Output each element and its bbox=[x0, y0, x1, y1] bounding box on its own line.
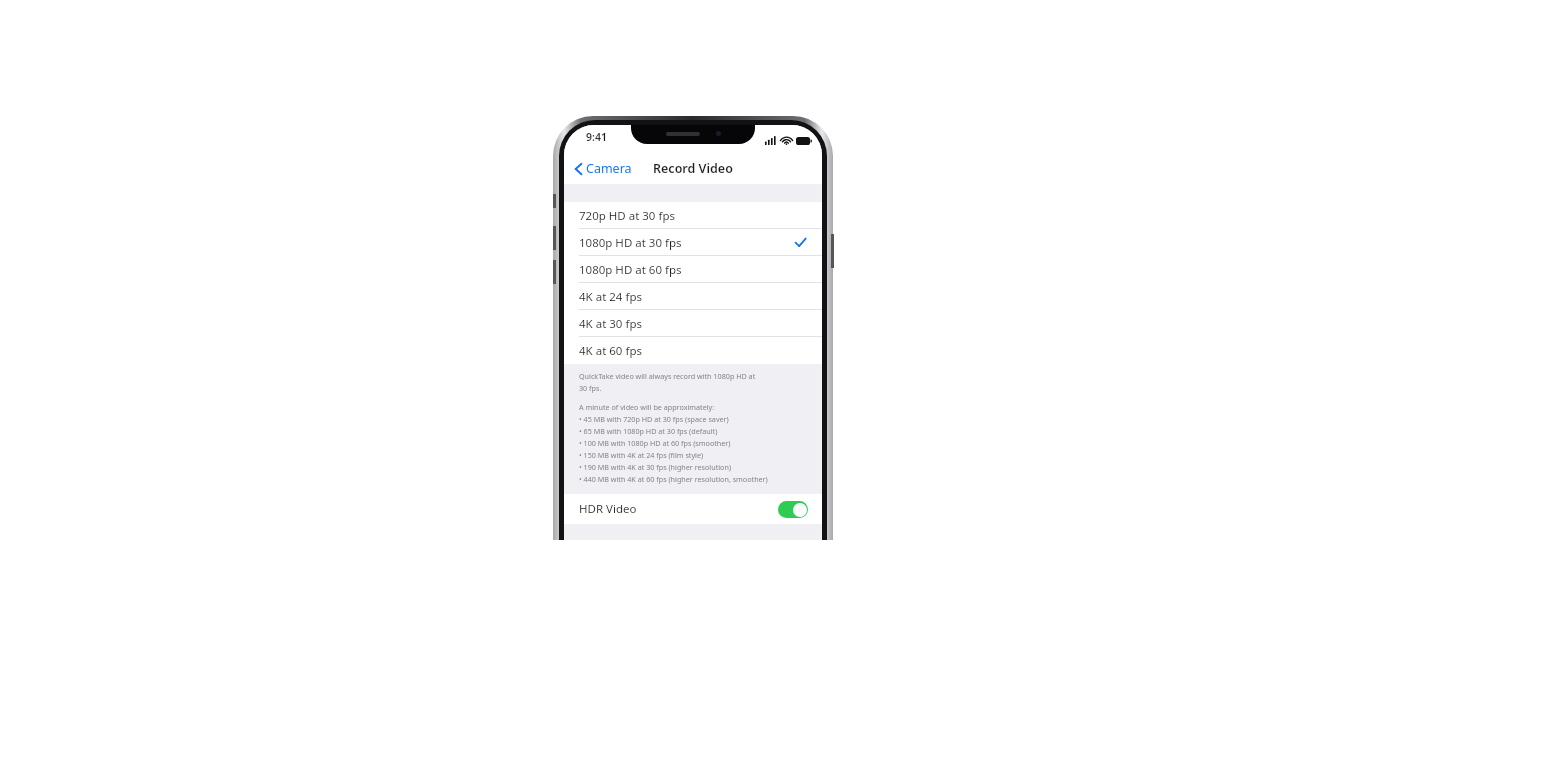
other: Selected bbox=[795, 238, 806, 247]
staticText: HDR Video bbox=[579, 501, 637, 517]
staticText: 4K at 60 fps bbox=[579, 343, 642, 359]
staticText: 720p HD at 30 fps bbox=[579, 208, 675, 224]
staticText: • 150 MB with 4K at 24 fps (film style) bbox=[579, 450, 704, 460]
staticText: • 45 MB with 720p HD at 30 fps (space sa… bbox=[579, 414, 729, 424]
staticText: 1080p HD at 60 fps bbox=[579, 262, 682, 278]
staticText: 9:41 bbox=[586, 130, 607, 144]
button[interactable]: 4K at 30 fps bbox=[564, 310, 822, 337]
staticText: 4K at 30 fps bbox=[579, 316, 642, 332]
button[interactable]: 1080p HD at 30 fps bbox=[564, 229, 822, 256]
staticText: 1080p HD at 30 fps bbox=[579, 235, 682, 251]
staticText: 4K at 24 fps bbox=[579, 289, 642, 305]
staticText: • 65 MB with 1080p HD at 30 fps (default… bbox=[579, 426, 718, 436]
staticText: A minute of video will be approximately: bbox=[579, 402, 715, 412]
button[interactable]: 1080p HD at 60 fps bbox=[564, 256, 822, 283]
staticText: • 190 MB with 4K at 30 fps (higher resol… bbox=[579, 462, 732, 472]
staticText: • 100 MB with 1080p HD at 60 fps (smooth… bbox=[579, 438, 731, 448]
staticText: Record Video bbox=[653, 160, 733, 177]
button[interactable]: HDR Video bbox=[564, 494, 822, 524]
staticText: • 440 MB with 4K at 60 fps (higher resol… bbox=[579, 474, 768, 484]
staticText: Camera bbox=[586, 160, 632, 177]
button[interactable]: Camera bbox=[572, 157, 635, 180]
button[interactable]: 4K at 60 fps bbox=[564, 337, 822, 364]
button[interactable]: 720p HD at 30 fps bbox=[564, 202, 822, 229]
button[interactable]: 4K at 24 fps bbox=[564, 283, 822, 310]
staticText: QuickTake video will always record with … bbox=[579, 371, 756, 381]
button[interactable]: HDR Video toggle, on bbox=[778, 501, 808, 518]
staticText: 30 fps. bbox=[579, 383, 602, 393]
